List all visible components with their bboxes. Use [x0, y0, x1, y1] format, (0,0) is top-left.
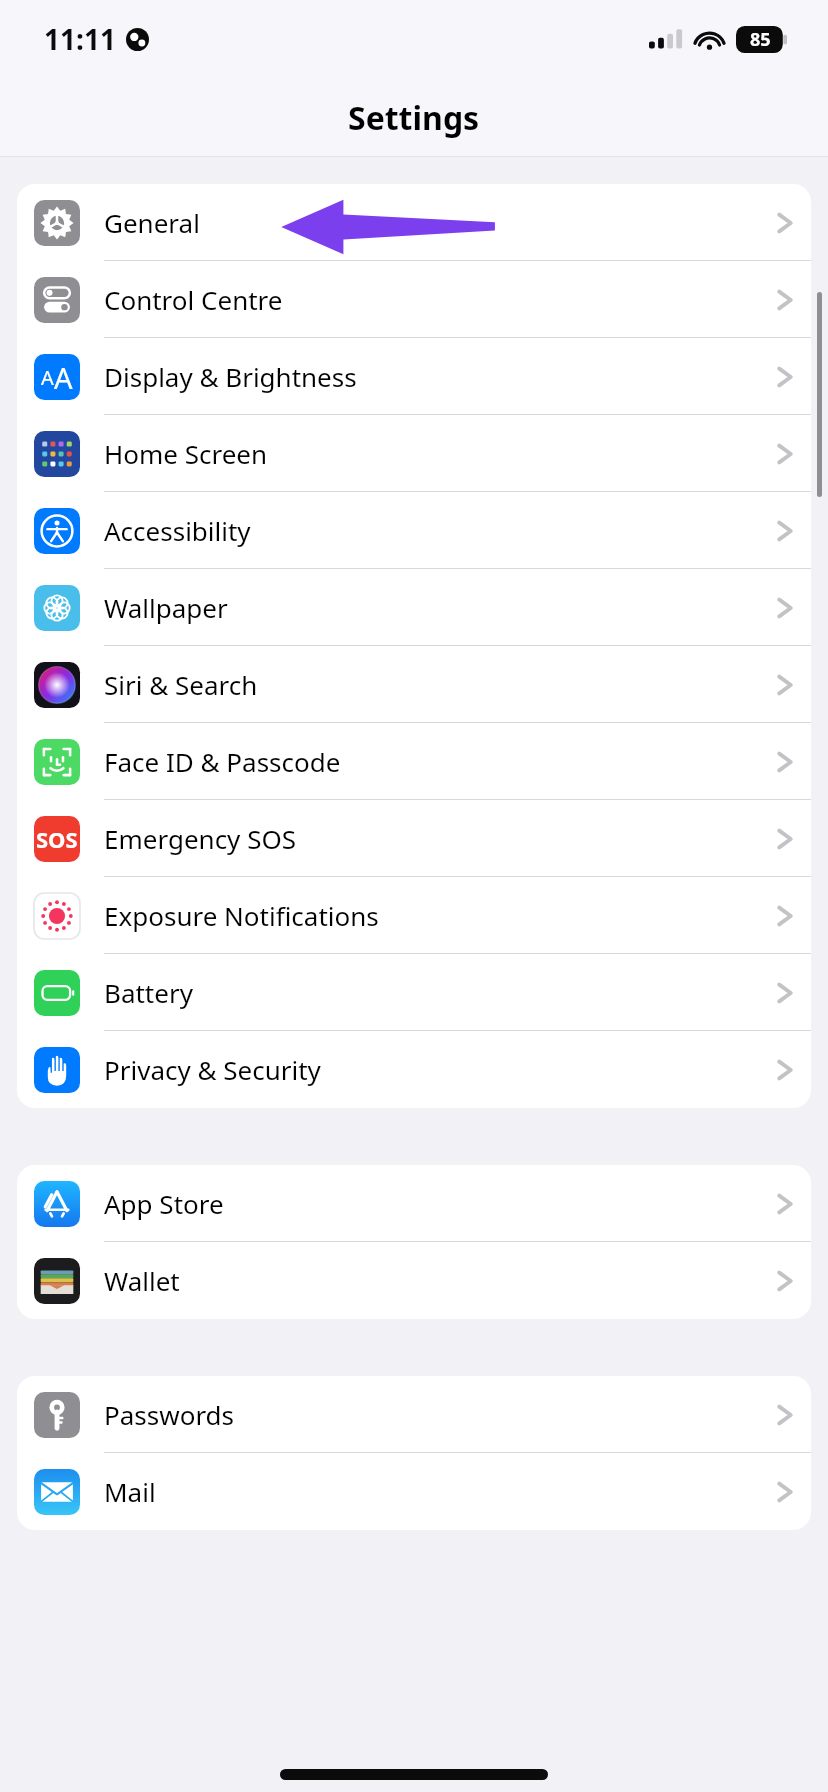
staticText: 11:11 — [44, 20, 116, 58]
button[interactable]: Face ID & Passcode — [17, 723, 811, 800]
button[interactable]: Mail — [17, 1453, 811, 1530]
staticText: App Store — [104, 1186, 776, 1221]
button[interactable]: Exposure Notifications — [17, 877, 811, 954]
staticText: Exposure Notifications — [104, 898, 776, 933]
button[interactable]: Home Screen — [17, 415, 811, 492]
button[interactable]: Control Centre — [17, 261, 811, 338]
button[interactable]: Wallet — [17, 1242, 811, 1319]
staticText: A — [54, 358, 73, 397]
staticText: General — [104, 205, 776, 240]
staticText: Wallet — [104, 1263, 776, 1298]
staticText: Emergency SOS — [104, 821, 776, 856]
staticText: Control Centre — [104, 282, 776, 317]
staticText: Passwords — [104, 1397, 776, 1432]
button[interactable]: Accessibility — [17, 492, 811, 569]
button[interactable]: SOS — [17, 800, 811, 877]
button[interactable]: Siri & Search — [17, 646, 811, 723]
staticText: Siri & Search — [104, 667, 776, 702]
button[interactable]: General — [17, 184, 811, 261]
button[interactable]: App Store — [17, 1165, 811, 1242]
staticText: Wallpaper — [104, 590, 776, 625]
staticText: Accessibility — [104, 513, 776, 548]
staticText: 85 — [750, 27, 771, 52]
staticText: Settings — [348, 96, 480, 140]
button[interactable]: Privacy & Security — [17, 1031, 811, 1108]
staticText: Battery — [104, 975, 776, 1010]
button[interactable]: A — [17, 338, 811, 415]
button[interactable]: Passwords — [17, 1376, 811, 1453]
staticText: Display & Brightness — [104, 359, 776, 394]
button[interactable]: Battery — [17, 954, 811, 1031]
staticText: Mail — [104, 1474, 776, 1509]
staticText: Face ID & Passcode — [104, 744, 776, 779]
button[interactable]: Wallpaper — [17, 569, 811, 646]
staticText: SOS — [36, 824, 78, 854]
staticText: A — [41, 364, 54, 391]
staticText: Home Screen — [104, 436, 776, 471]
staticText: Privacy & Security — [104, 1052, 776, 1087]
